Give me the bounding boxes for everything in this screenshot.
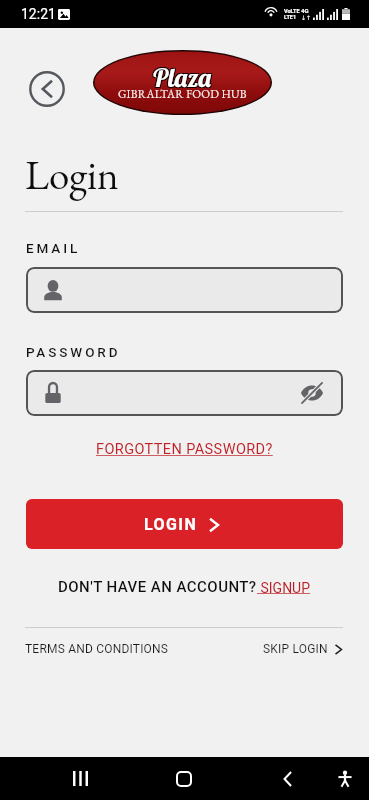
staticText: Plaza (153, 61, 214, 94)
staticText: Plaza (153, 62, 214, 95)
staticText: LTE1 (284, 14, 297, 20)
staticText: SIGNUP (257, 580, 311, 596)
staticText: Login (25, 148, 119, 202)
staticText: GIBRALTAR FOOD HUB (118, 86, 247, 101)
staticText: FORGOTTEN PASSWORD? (96, 441, 273, 458)
staticText: Plaza (151, 62, 212, 95)
button[interactable]: Back (263, 757, 311, 800)
staticText: 12:21 (21, 6, 56, 22)
staticText: TERMS AND CONDITIONS (25, 642, 169, 656)
staticText: Plaza (153, 60, 214, 93)
button[interactable]: Accessibility (321, 757, 369, 800)
staticText: 4G (301, 7, 309, 14)
staticText: Plaza (151, 60, 212, 93)
button[interactable]: Home (160, 757, 208, 800)
button[interactable]: Password (26, 370, 343, 416)
button[interactable]: Recent apps (56, 757, 104, 800)
staticText: ↓↑ (301, 14, 312, 21)
staticText: Plaza (152, 61, 213, 94)
button[interactable]: LOGIN (26, 499, 343, 549)
staticText: LOGIN (144, 515, 198, 534)
button[interactable]: SKIP LOGIN (263, 639, 344, 659)
staticText: PASSWORD (26, 344, 121, 360)
button[interactable]: Email address (26, 267, 343, 313)
staticText: SKIP LOGIN (263, 642, 328, 656)
button[interactable]: TERMS AND CONDITIONS (25, 639, 169, 659)
button[interactable]: SIGNUP (257, 580, 311, 596)
staticText: DON'T HAVE AN ACCOUNT? (58, 578, 257, 596)
staticText: VoLTE (284, 8, 300, 14)
staticText: EMAIL (26, 240, 81, 256)
button[interactable]: Back (29, 71, 65, 107)
staticText: Plaza (152, 62, 213, 95)
staticText: Plaza (151, 61, 212, 94)
staticText: Plaza (152, 60, 213, 93)
button[interactable]: FORGOTTEN PASSWORD? (90, 438, 279, 461)
button[interactable]: Show password (300, 381, 324, 405)
